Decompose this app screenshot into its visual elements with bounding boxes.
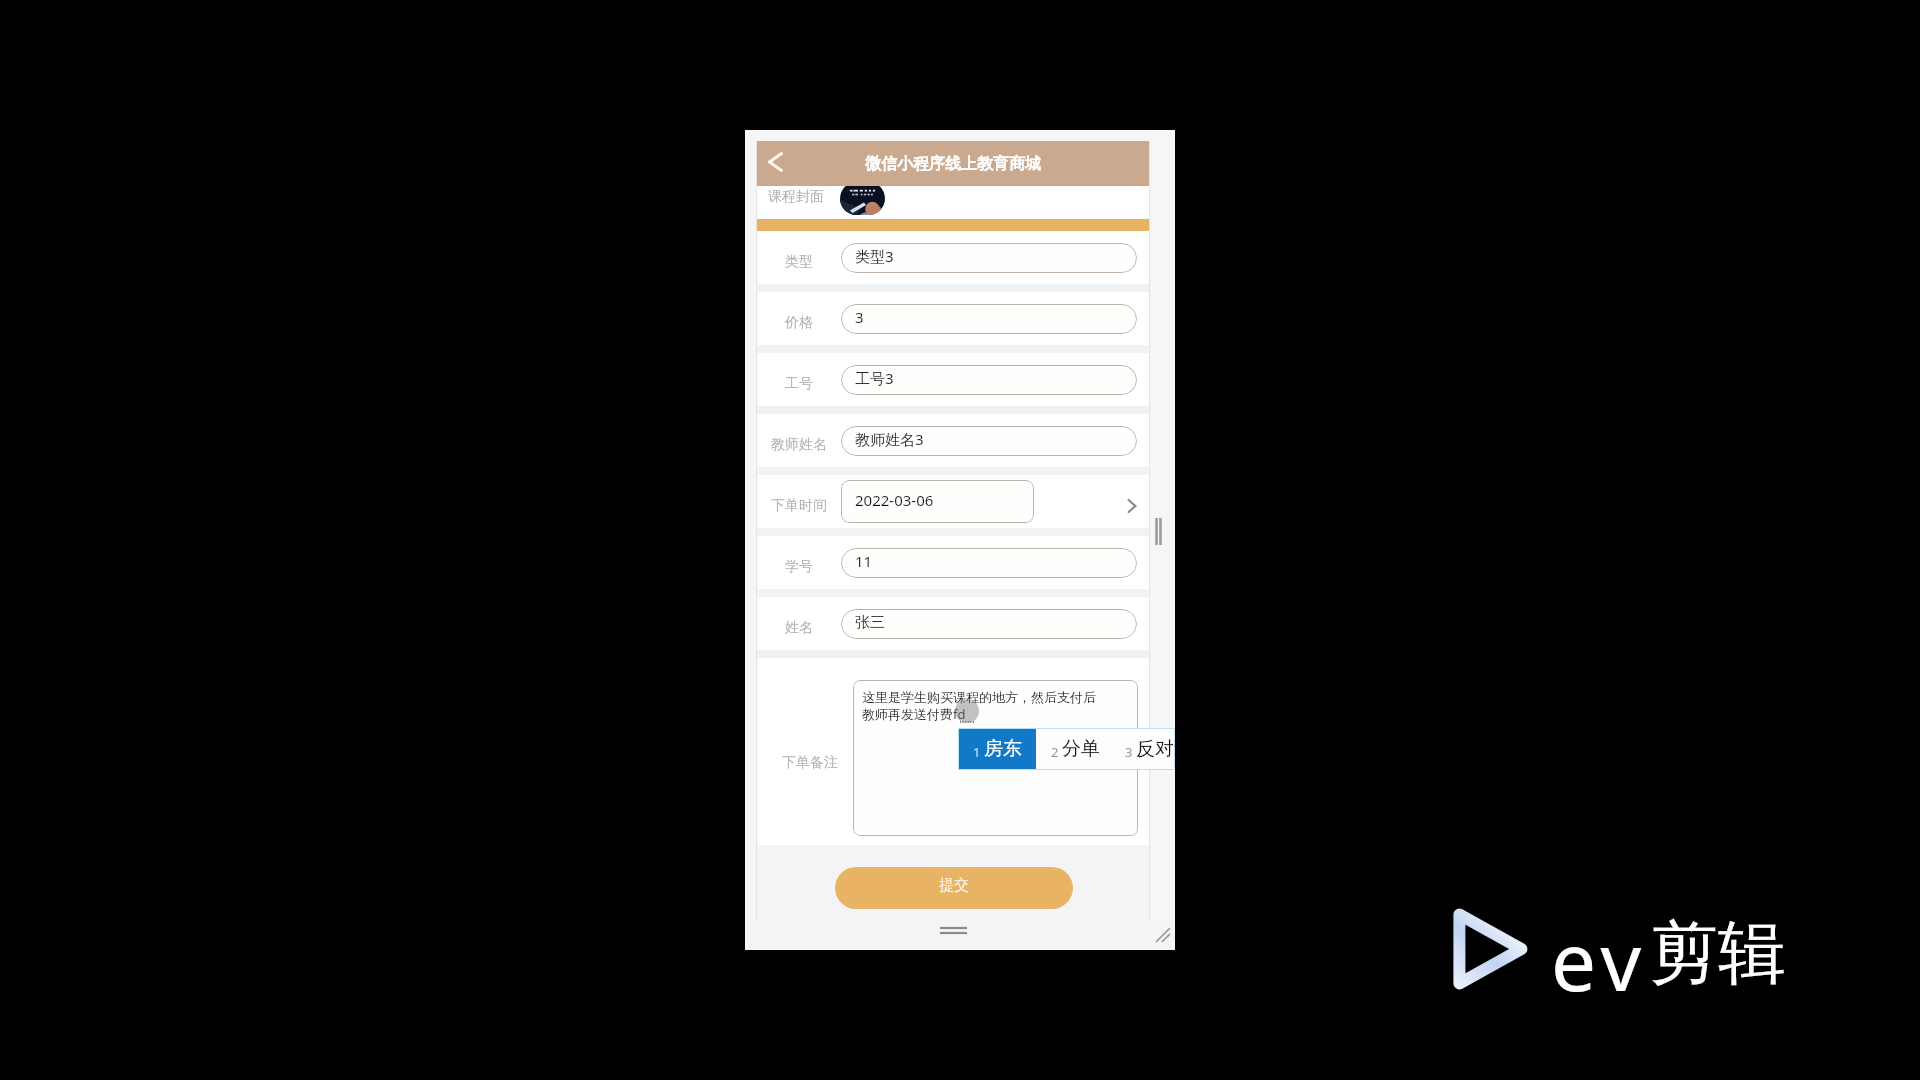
button[interactable]: 提交 (835, 867, 1073, 909)
staticText: 下单时间 (771, 497, 827, 515)
button[interactable]: 2 (1036, 728, 1114, 770)
staticText: 姓名 (785, 619, 813, 637)
staticText: 3 (855, 307, 864, 327)
staticText: 剪辑 (1650, 911, 1786, 997)
other: EV watermark (1451, 905, 1531, 993)
staticText: 3 (1125, 743, 1133, 761)
staticText: 价格 (785, 314, 813, 332)
button[interactable]: Back (755, 139, 795, 184)
button[interactable]: 价格 (757, 292, 1149, 345)
staticText: 课程封面 (768, 188, 824, 206)
button[interactable]: 这里是学生购买课程的地方，然后支付后 教师再发送付费fd (853, 680, 1138, 836)
button[interactable]: 课程封面 (757, 186, 1149, 219)
staticText: 教师姓名 (771, 436, 827, 454)
button[interactable]: 学号 (757, 536, 1149, 589)
staticText: 提交 (939, 876, 969, 895)
staticText: 工号 (785, 375, 813, 393)
button[interactable]: 姓名 (757, 597, 1149, 650)
staticText: 教师姓名3 (855, 429, 924, 449)
button[interactable]: 1 (958, 728, 1036, 770)
staticText: 张三 (855, 613, 885, 632)
button[interactable]: 类型 (757, 231, 1149, 284)
button[interactable]: 下单时间 (757, 475, 1149, 528)
staticText: 学号 (785, 558, 813, 576)
staticText: 微信小程序线上教育商城 (865, 154, 1041, 174)
staticText: 2 (1051, 743, 1059, 761)
button[interactable]: 3 (1114, 728, 1175, 770)
staticText: 工号3 (855, 368, 894, 388)
staticText: 11 (855, 551, 873, 571)
button[interactable]: 教师姓名 (757, 414, 1149, 467)
staticText: ev (1551, 905, 1648, 1014)
button[interactable]: 工号 (757, 353, 1149, 406)
staticText: 下单备注 (782, 754, 838, 772)
staticText: 2022-03-06 (855, 490, 934, 510)
staticText: 类型3 (855, 246, 894, 266)
staticText: 类型 (785, 253, 813, 271)
other: Pick date (1122, 496, 1142, 516)
staticText: 反对 (1136, 737, 1174, 761)
staticText: 1 (973, 743, 981, 761)
other: Resize (1156, 928, 1170, 942)
staticText: 房东 (984, 737, 1022, 761)
staticText: 分单 (1062, 737, 1100, 761)
button[interactable]: Home (940, 927, 967, 935)
staticText: 这里是学生购买课程的地方，然后支付后 教师再发送付费fd (862, 689, 1127, 722)
